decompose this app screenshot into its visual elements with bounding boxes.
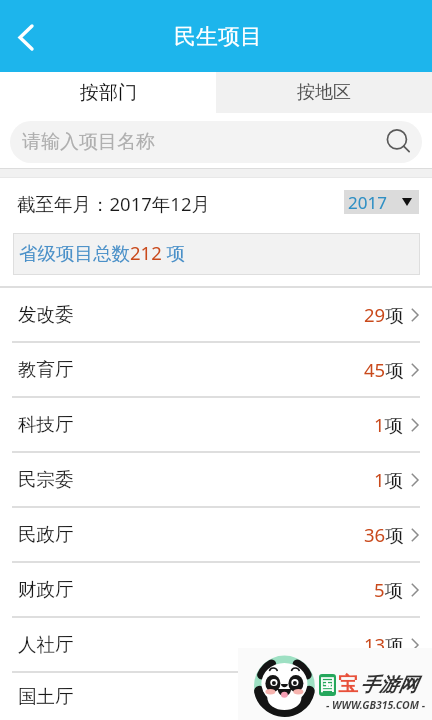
staticText: 按部门 bbox=[80, 81, 137, 105]
button[interactable]: 请输入项目名称 bbox=[10, 121, 422, 163]
button[interactable]: 人社厅 bbox=[0, 618, 432, 671]
staticText: 国土厅 bbox=[18, 685, 74, 708]
staticText: 发改委 bbox=[18, 303, 74, 326]
button[interactable]: 国土厅 bbox=[0, 673, 432, 720]
staticText: 请输入项目名称 bbox=[22, 130, 155, 154]
staticText: 民宗委 bbox=[18, 468, 74, 491]
button[interactable]: 2017 bbox=[344, 190, 419, 214]
staticText: 8项 bbox=[374, 684, 404, 709]
button[interactable]: 教育厅 bbox=[0, 343, 432, 396]
staticText: 5项 bbox=[374, 577, 404, 602]
button[interactable]: 财政厅 bbox=[0, 563, 432, 616]
staticText: 国 bbox=[320, 676, 335, 695]
button[interactable]: 科技厅 bbox=[0, 398, 432, 451]
button[interactable]: 发改委 bbox=[0, 288, 432, 341]
button[interactable]: 按部门 bbox=[0, 72, 216, 113]
staticText: 科技厅 bbox=[18, 413, 74, 436]
staticText: 宝 bbox=[338, 672, 358, 697]
staticText: - WWW.GB315.COM - bbox=[326, 698, 426, 712]
staticText: 手游网 bbox=[360, 673, 417, 697]
staticText: 人社厅 bbox=[18, 633, 74, 656]
staticText: 按地区 bbox=[297, 81, 351, 104]
staticText: 36项 bbox=[364, 522, 404, 547]
staticText: 财政厅 bbox=[18, 578, 74, 601]
staticText: 13项 bbox=[364, 632, 404, 657]
staticText: 2017 bbox=[348, 191, 387, 214]
staticText: 截至年月：2017年12月 bbox=[17, 191, 210, 216]
staticText: 民政厅 bbox=[18, 523, 74, 546]
button[interactable]: Back bbox=[4, 14, 48, 58]
button[interactable]: 民政厅 bbox=[0, 508, 432, 561]
staticText: 29项 bbox=[364, 302, 404, 327]
staticText: 1项 bbox=[374, 467, 404, 492]
button[interactable]: 民宗委 bbox=[0, 453, 432, 506]
staticText: 民生项目 bbox=[174, 23, 262, 51]
button[interactable]: 按地区 bbox=[216, 72, 432, 113]
staticText: 1项 bbox=[374, 412, 404, 437]
staticText: 省级项目总数212 项 bbox=[19, 240, 186, 265]
staticText: 教育厅 bbox=[18, 358, 74, 381]
staticText: 45项 bbox=[364, 357, 404, 382]
